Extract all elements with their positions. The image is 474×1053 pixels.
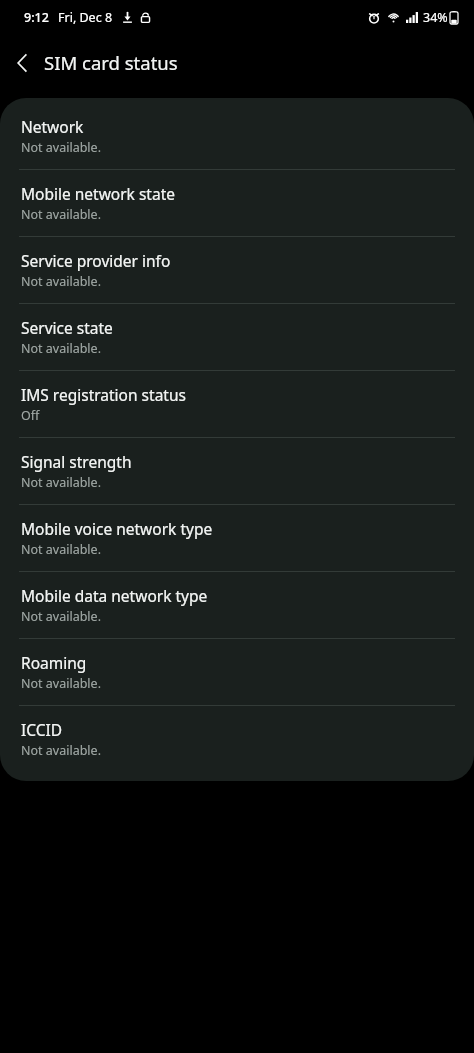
staticText: Not available. xyxy=(21,675,101,692)
button[interactable]: IMS registration status xyxy=(0,371,474,437)
staticText: IMS registration status xyxy=(21,384,186,405)
button[interactable]: Mobile network state xyxy=(0,170,474,236)
staticText: Roaming xyxy=(21,652,87,673)
button[interactable]: Roaming xyxy=(0,639,474,705)
staticText: Not available. xyxy=(21,742,101,759)
staticText: Not available. xyxy=(21,206,101,223)
staticText: Mobile network state xyxy=(21,183,175,204)
staticText: Service state xyxy=(21,317,113,338)
staticText: Network xyxy=(21,116,84,137)
button[interactable]: Back xyxy=(0,41,44,85)
button[interactable]: Mobile voice network type xyxy=(0,505,474,571)
staticText: SIM card status xyxy=(44,50,178,75)
staticText: Not available. xyxy=(21,340,101,357)
staticText: Not available. xyxy=(21,273,101,290)
button[interactable]: Network xyxy=(0,98,474,169)
staticText: Mobile data network type xyxy=(21,585,208,606)
button[interactable]: Mobile data network type xyxy=(0,572,474,638)
staticText: ICCID xyxy=(21,719,63,740)
staticText: Fri, Dec 8 xyxy=(58,9,113,26)
button[interactable]: ICCID xyxy=(0,706,474,781)
staticText: Not available. xyxy=(21,541,101,558)
staticText: Signal strength xyxy=(21,451,132,472)
staticText: 34% xyxy=(423,9,448,26)
staticText: Service provider info xyxy=(21,250,171,271)
button[interactable]: Service provider info xyxy=(0,237,474,303)
staticText: Not available. xyxy=(21,608,101,625)
staticText: Not available. xyxy=(21,474,101,491)
button[interactable]: Service state xyxy=(0,304,474,370)
staticText: Off xyxy=(21,407,40,424)
staticText: Mobile voice network type xyxy=(21,518,213,539)
button[interactable]: Signal strength xyxy=(0,438,474,504)
staticText: 9:12 xyxy=(24,9,49,26)
staticText: Not available. xyxy=(21,139,101,156)
